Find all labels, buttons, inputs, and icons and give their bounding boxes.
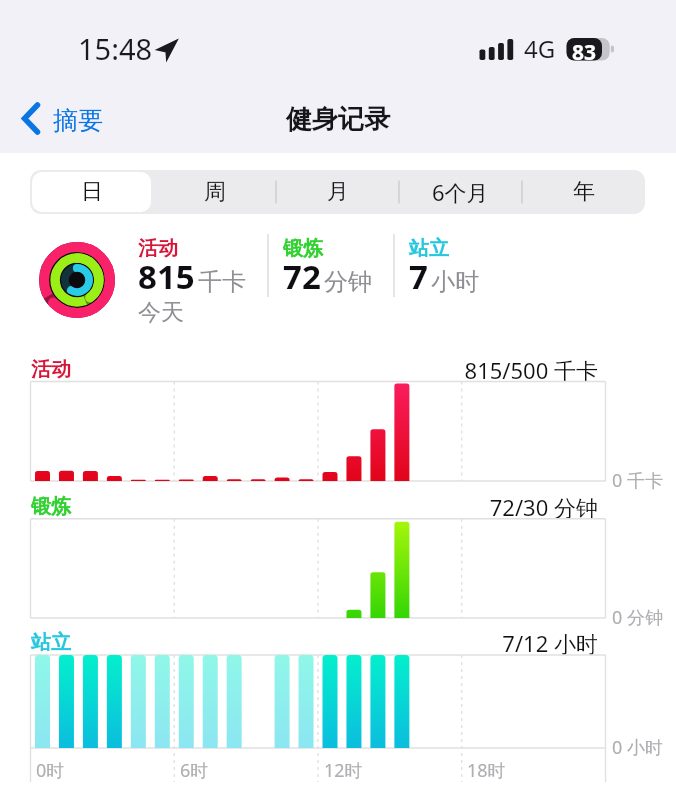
staticText: 18时	[467, 758, 506, 783]
staticText: 健身记录	[0, 103, 676, 136]
staticText: 0 千卡	[612, 468, 663, 493]
button[interactable]: 周	[153, 170, 276, 214]
staticText: 815	[138, 254, 195, 299]
button[interactable]: 月	[276, 170, 399, 214]
staticText: 锻炼	[31, 494, 71, 519]
staticText: 月	[327, 178, 349, 206]
staticText: 年	[573, 178, 595, 206]
staticText: 锻炼	[283, 236, 323, 261]
staticText: 小时	[431, 267, 479, 297]
button[interactable]	[30, 170, 153, 214]
staticText: 0 小时	[612, 735, 663, 760]
staticText: 活动	[31, 357, 71, 382]
staticText: 0时	[36, 758, 65, 783]
staticText: 12时	[324, 758, 363, 783]
staticText: 7/12 小时	[0, 628, 598, 658]
staticText: 7	[409, 254, 428, 299]
staticText: 千卡	[198, 267, 246, 297]
button[interactable]: 活动圆环	[39, 242, 115, 318]
staticText: 15:48	[78, 29, 153, 68]
staticText: 6个月	[432, 177, 489, 207]
staticText: 周	[204, 178, 226, 206]
staticText: 72/30 分钟	[0, 492, 598, 522]
staticText: 站立	[31, 630, 71, 655]
button[interactable]: 站立	[409, 231, 529, 326]
staticText: 分钟	[324, 267, 372, 297]
staticText: 72	[283, 254, 321, 299]
staticText: 83	[572, 38, 597, 61]
button[interactable]: 年	[522, 170, 645, 214]
staticText: 4G	[524, 32, 556, 65]
staticText: 站立	[409, 236, 449, 261]
staticText: 日	[81, 178, 103, 206]
staticText: 摘要	[53, 105, 103, 136]
staticText: 活动	[138, 236, 178, 261]
staticText: 815/500 千卡	[0, 355, 598, 385]
button[interactable]: 摘要	[16, 98, 108, 139]
staticText: 今天	[138, 298, 184, 327]
button[interactable]: 6个月	[399, 170, 522, 214]
button[interactable]: 活动	[138, 231, 258, 326]
staticText: 0 分钟	[612, 605, 663, 630]
button[interactable]: 日	[32, 172, 151, 212]
staticText: 6时	[180, 758, 209, 783]
button[interactable]: 锻炼	[283, 231, 403, 326]
